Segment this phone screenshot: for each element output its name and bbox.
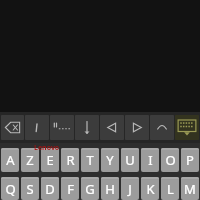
button[interactable]: L [161,177,179,200]
staticText: A [6,151,15,169]
staticText: Y [106,151,114,169]
staticText: M [184,180,196,198]
button[interactable]: U [121,148,139,172]
button[interactable]: J [121,177,139,200]
staticText: R [66,151,75,169]
button[interactable]: T [81,148,99,172]
button[interactable]: Dashed line [50,115,74,140]
staticText: D [45,180,55,198]
button[interactable]: Enter [75,115,99,140]
staticText: K [146,180,155,198]
button[interactable]: Y [101,148,119,172]
staticText: Lenovo [34,143,60,153]
staticText: G [85,180,95,198]
staticText: I [148,151,153,169]
button[interactable]: P [181,148,199,172]
staticText: S [26,180,34,198]
staticText: F [67,180,74,198]
button[interactable]: S [21,177,39,200]
button[interactable]: K [141,177,159,200]
button[interactable]: D [41,177,59,200]
staticText: E [46,151,54,169]
staticText: T [86,151,94,169]
button[interactable]: Move right [125,115,149,140]
button[interactable]: E [41,148,59,172]
button[interactable]: F [61,177,79,200]
button[interactable]: I [141,148,159,172]
button[interactable]: H [101,177,119,200]
staticText: P [186,151,194,169]
staticText: H [105,180,115,198]
button[interactable]: Backspace [1,115,24,140]
staticText: J [128,180,132,198]
button[interactable]: Z [21,148,39,172]
button[interactable]: Move left [100,115,124,140]
button[interactable]: M [181,177,199,200]
staticText: Q [5,180,16,198]
button[interactable]: A [1,148,19,172]
staticText: L [167,180,174,198]
button[interactable]: R [61,148,79,172]
button[interactable]: Hide keyboard [175,115,199,140]
button[interactable]: G [81,177,99,200]
button[interactable]: O [161,148,179,172]
staticText: U [125,151,135,169]
button[interactable]: Comma [25,115,49,140]
button[interactable]: Shift [150,115,174,140]
staticText: O [165,151,176,169]
staticText: Z [26,151,34,169]
button[interactable]: Q [1,177,19,200]
